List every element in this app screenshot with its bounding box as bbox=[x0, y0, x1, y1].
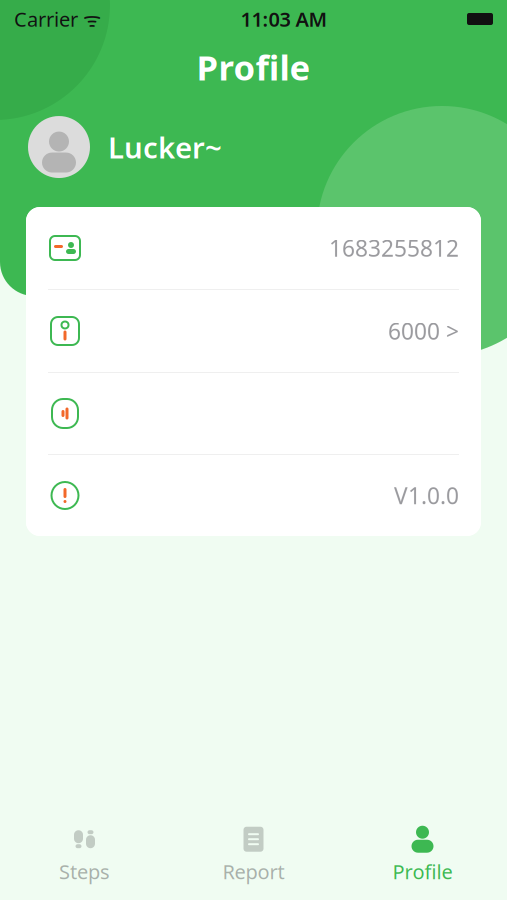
staticText: 1683255812 bbox=[329, 233, 459, 263]
button[interactable]: V1.0.0 bbox=[26, 455, 481, 536]
staticText: Steps bbox=[59, 858, 110, 885]
staticText: Carrier bbox=[14, 6, 78, 32]
button[interactable]: Report bbox=[169, 819, 338, 891]
staticText: 11:03 AM bbox=[240, 6, 327, 32]
button[interactable]: 6000 bbox=[26, 290, 481, 372]
staticText: Report bbox=[222, 858, 284, 885]
staticText: ᯤ bbox=[78, 6, 101, 32]
button[interactable]: Steps bbox=[0, 819, 169, 891]
button[interactable]: 1683255812 bbox=[26, 207, 481, 289]
staticText: V1.0.0 bbox=[394, 480, 459, 510]
staticText: 6000 bbox=[388, 316, 440, 346]
button[interactable] bbox=[26, 373, 481, 454]
staticText: Lucker~ bbox=[108, 128, 222, 167]
staticText: Profile bbox=[392, 858, 452, 885]
staticText: Profile bbox=[196, 44, 310, 90]
staticText: > bbox=[440, 316, 459, 346]
button[interactable]: Profile bbox=[338, 819, 507, 891]
